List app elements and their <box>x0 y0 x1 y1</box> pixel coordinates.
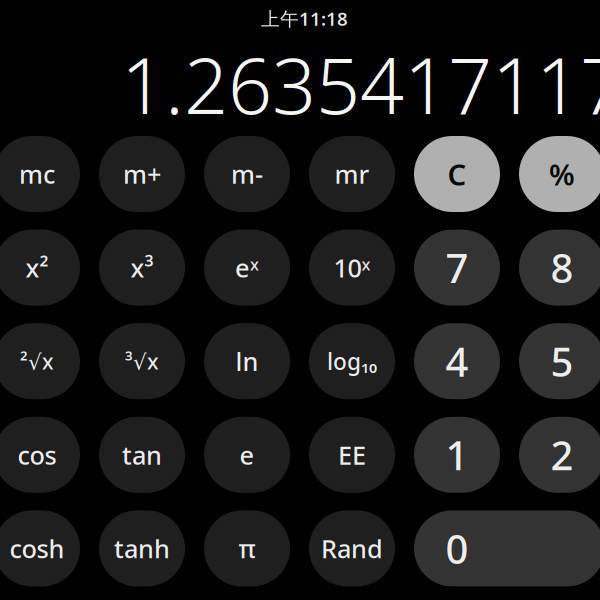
staticText: ln <box>235 344 258 378</box>
button[interactable]: π <box>204 510 290 586</box>
button[interactable]: log₁₀ <box>309 323 395 399</box>
staticText: 1.263541711779 <box>121 33 600 135</box>
staticText: Rand <box>321 532 383 565</box>
button[interactable]: cosh <box>0 510 80 586</box>
staticText: mr <box>334 157 369 191</box>
staticText: 8 <box>550 241 573 294</box>
button[interactable]: C <box>414 136 500 212</box>
staticText: log₁₀ <box>327 346 377 376</box>
staticText: 上午11:18 <box>261 6 348 31</box>
button[interactable]: x³ <box>99 230 185 306</box>
button[interactable]: 8 <box>519 230 600 306</box>
button[interactable]: 0 <box>414 510 600 586</box>
staticText: cos <box>17 438 56 472</box>
staticText: 7 <box>445 241 468 294</box>
button[interactable]: ln <box>204 323 290 399</box>
staticText: 0 <box>445 522 468 575</box>
staticText: 10ˣ <box>333 251 370 284</box>
staticText: tan <box>122 438 162 472</box>
staticText: π <box>238 532 255 565</box>
staticText: x² <box>25 251 48 284</box>
button[interactable]: ²√x <box>0 323 80 399</box>
button[interactable]: 10ˣ <box>309 230 395 306</box>
staticText: 4 <box>445 335 468 388</box>
button[interactable]: eˣ <box>204 230 290 306</box>
button[interactable]: % <box>519 136 600 212</box>
staticText: 5 <box>550 335 573 388</box>
staticText: tanh <box>114 532 170 565</box>
staticText: ³√x <box>125 347 159 375</box>
staticText: 2 <box>550 428 573 481</box>
button[interactable]: m+ <box>99 136 185 212</box>
button[interactable]: cos <box>0 417 80 493</box>
button[interactable]: mr <box>309 136 395 212</box>
staticText: ²√x <box>20 347 54 375</box>
staticText: C <box>447 154 466 193</box>
staticText: m- <box>231 157 263 191</box>
button[interactable]: ³√x <box>99 323 185 399</box>
staticText: 1 <box>445 428 468 481</box>
staticText: cosh <box>9 532 64 565</box>
button[interactable]: Rand <box>309 510 395 586</box>
button[interactable]: 1 <box>414 417 500 493</box>
staticText: % <box>549 154 575 193</box>
staticText: eˣ <box>235 251 259 284</box>
staticText: e <box>239 438 254 472</box>
button[interactable]: EE <box>309 417 395 493</box>
button[interactable]: tan <box>99 417 185 493</box>
button[interactable]: 5 <box>519 323 600 399</box>
staticText: mc <box>19 157 55 191</box>
button[interactable]: e <box>204 417 290 493</box>
button[interactable]: tanh <box>99 510 185 586</box>
button[interactable]: m- <box>204 136 290 212</box>
button[interactable]: 7 <box>414 230 500 306</box>
staticText: EE <box>338 438 366 472</box>
button[interactable]: 4 <box>414 323 500 399</box>
button[interactable]: 2 <box>519 417 600 493</box>
staticText: x³ <box>130 251 153 284</box>
staticText: m+ <box>123 157 161 191</box>
button[interactable]: x² <box>0 230 80 306</box>
button[interactable]: mc <box>0 136 80 212</box>
